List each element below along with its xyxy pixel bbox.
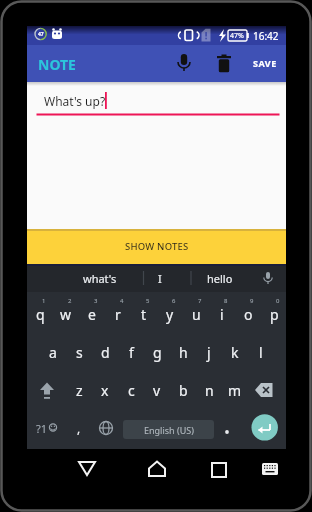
button[interactable] — [253, 380, 277, 402]
staticText: 9 — [250, 297, 254, 305]
button[interactable]: v — [144, 379, 170, 401]
staticText: e — [88, 305, 96, 324]
staticText: p — [270, 305, 279, 324]
button[interactable]: 9 — [239, 290, 265, 312]
button[interactable]: t — [131, 303, 157, 325]
button[interactable]: r — [105, 303, 131, 325]
staticText: v — [153, 381, 161, 400]
staticText: y — [166, 305, 174, 324]
button[interactable]: n — [196, 379, 222, 401]
staticText: 1 — [42, 297, 46, 305]
button[interactable] — [72, 454, 102, 482]
button[interactable] — [210, 49, 238, 77]
button[interactable]: s — [66, 341, 92, 363]
button[interactable]: u — [183, 303, 209, 325]
staticText: a — [49, 343, 57, 362]
button[interactable]: SHOW NOTES — [27, 229, 286, 264]
staticText: z — [76, 381, 83, 400]
staticText: hello — [207, 271, 233, 286]
staticText: NOTE — [38, 55, 76, 74]
staticText: 5 — [146, 297, 150, 305]
staticText: k — [231, 343, 239, 362]
button[interactable]: m — [222, 379, 248, 401]
staticText: u — [192, 305, 201, 324]
button[interactable]: f — [118, 341, 144, 363]
button[interactable]: b — [170, 379, 196, 401]
button[interactable] — [204, 454, 234, 482]
button[interactable]: c — [118, 379, 144, 401]
staticText: 0 — [276, 297, 280, 305]
button[interactable]: 4 — [109, 290, 135, 312]
button[interactable]: p — [261, 303, 287, 325]
staticText: ?1 — [36, 421, 48, 436]
staticText: h — [179, 343, 188, 362]
staticText: l — [259, 343, 263, 362]
button[interactable]: k — [222, 341, 248, 363]
button[interactable]: a — [40, 341, 66, 363]
staticText: 4 — [120, 297, 124, 305]
staticText: o — [244, 305, 253, 324]
staticText: r — [115, 305, 121, 324]
button[interactable]: 6 — [161, 290, 187, 312]
staticText: q — [36, 305, 45, 324]
staticText: n — [205, 381, 214, 400]
button[interactable]: l — [248, 341, 274, 363]
button[interactable]: g — [144, 341, 170, 363]
staticText: j — [207, 343, 211, 362]
button[interactable]: I — [140, 264, 180, 292]
staticText: i — [220, 305, 224, 324]
staticText: , — [77, 420, 81, 436]
staticText: g — [153, 343, 162, 362]
button[interactable]: y — [157, 303, 183, 325]
staticText: SHOW NOTES — [125, 240, 189, 253]
staticText: what's — [83, 271, 117, 286]
button[interactable]: i — [209, 303, 235, 325]
staticText: What's up? — [44, 93, 106, 109]
staticText: 8 — [224, 297, 228, 305]
staticText: 47% — [230, 31, 244, 41]
staticText: 7 — [198, 297, 202, 305]
button[interactable]: SAVE — [247, 51, 283, 75]
button[interactable] — [142, 454, 172, 482]
staticText: x — [101, 381, 109, 400]
staticText: m — [228, 381, 242, 400]
staticText: w — [60, 305, 72, 324]
button[interactable]: 2 — [57, 290, 83, 312]
button[interactable]: English (US) — [123, 420, 214, 439]
button[interactable]: w — [53, 303, 79, 325]
staticText: 47 — [38, 31, 44, 38]
button[interactable]: z — [66, 379, 92, 401]
staticText: 6 — [172, 297, 176, 305]
staticText: t — [141, 305, 147, 324]
button[interactable]: e — [79, 303, 105, 325]
button[interactable]: j — [196, 341, 222, 363]
button[interactable]: what's — [70, 264, 130, 292]
staticText: d — [101, 343, 110, 362]
staticText: c — [128, 381, 135, 400]
button[interactable]: 7 — [187, 290, 213, 312]
button[interactable]: 3 — [83, 290, 109, 312]
button[interactable]: hello — [195, 264, 245, 292]
button[interactable] — [170, 49, 198, 77]
button[interactable]: o — [235, 303, 261, 325]
staticText: 16:42 — [253, 29, 279, 43]
staticText: 3 — [94, 297, 98, 305]
staticText: English (US) — [144, 424, 194, 436]
button[interactable]: q — [27, 303, 53, 325]
staticText: f — [129, 343, 134, 362]
staticText: SAVE — [253, 57, 277, 69]
button[interactable]: d — [92, 341, 118, 363]
staticText: I — [158, 271, 162, 286]
button[interactable]: x — [92, 379, 118, 401]
button[interactable]: h — [170, 341, 196, 363]
button[interactable]: 1 — [31, 290, 57, 312]
button[interactable]: 0 — [265, 290, 291, 312]
staticText: s — [76, 343, 83, 362]
button[interactable]: 8 — [213, 290, 239, 312]
button[interactable]: 5 — [135, 290, 161, 312]
staticText: b — [179, 381, 188, 400]
staticText: 2 — [68, 297, 72, 305]
button[interactable] — [35, 380, 59, 402]
